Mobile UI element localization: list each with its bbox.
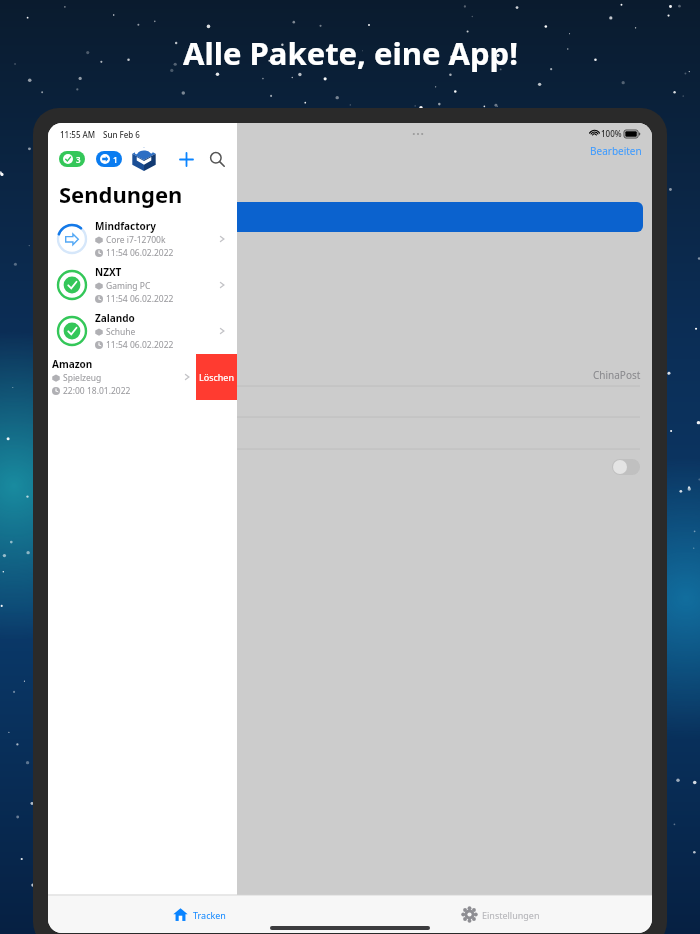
- button[interactable]: App Logo: [131, 146, 157, 172]
- staticText: ChinaPost: [593, 368, 641, 382]
- staticText: 22:00 18.01.2022: [63, 385, 131, 397]
- button[interactable]: Bearbeiten: [590, 144, 642, 158]
- button[interactable]: Tracken: [48, 896, 350, 933]
- button[interactable]: [237, 202, 643, 232]
- staticText: Sun Feb 6: [103, 129, 140, 140]
- button[interactable]: 1: [96, 151, 122, 167]
- staticText: Sendungen: [59, 179, 183, 209]
- staticText: Amazon: [52, 357, 93, 371]
- staticText: 11:54 06.02.2022: [106, 293, 174, 305]
- staticText: Einstellungen: [482, 909, 540, 921]
- staticText: Gaming PC: [106, 280, 151, 292]
- staticText: NZXT: [95, 265, 122, 279]
- staticText: Core i7-12700k: [106, 234, 166, 246]
- staticText: 11:54 06.02.2022: [106, 247, 174, 259]
- staticText: Spielzeug: [63, 372, 102, 384]
- staticText: Alle Pakete, eine App!: [183, 32, 518, 74]
- staticText: Zalando: [95, 311, 135, 325]
- staticText: Bearbeiten: [590, 144, 642, 158]
- button[interactable]: Zalando: [48, 308, 237, 354]
- staticText: 100%: [601, 128, 622, 139]
- staticText: Tracken: [193, 909, 226, 921]
- staticText: Mindfactory: [95, 219, 157, 233]
- staticText: 1: [113, 154, 118, 165]
- button[interactable]: Einstellungen: [350, 896, 652, 933]
- button[interactable]: Umschalter: [612, 459, 640, 475]
- button[interactable]: Mindfactory: [48, 216, 237, 262]
- staticText: 3: [76, 154, 81, 165]
- staticText: 11:55 AM: [60, 129, 96, 140]
- staticText: Löschen: [199, 371, 234, 383]
- button[interactable]: Amazon: [48, 357, 182, 397]
- staticText: Schuhe: [106, 326, 136, 338]
- staticText: 11:54 06.02.2022: [106, 339, 174, 351]
- button[interactable]: 3: [59, 151, 85, 167]
- button[interactable]: NZXT: [48, 262, 237, 308]
- button[interactable]: Hinzufügen: [174, 147, 198, 171]
- button[interactable]: Löschen: [196, 354, 237, 400]
- button[interactable]: Suchen: [205, 147, 229, 171]
